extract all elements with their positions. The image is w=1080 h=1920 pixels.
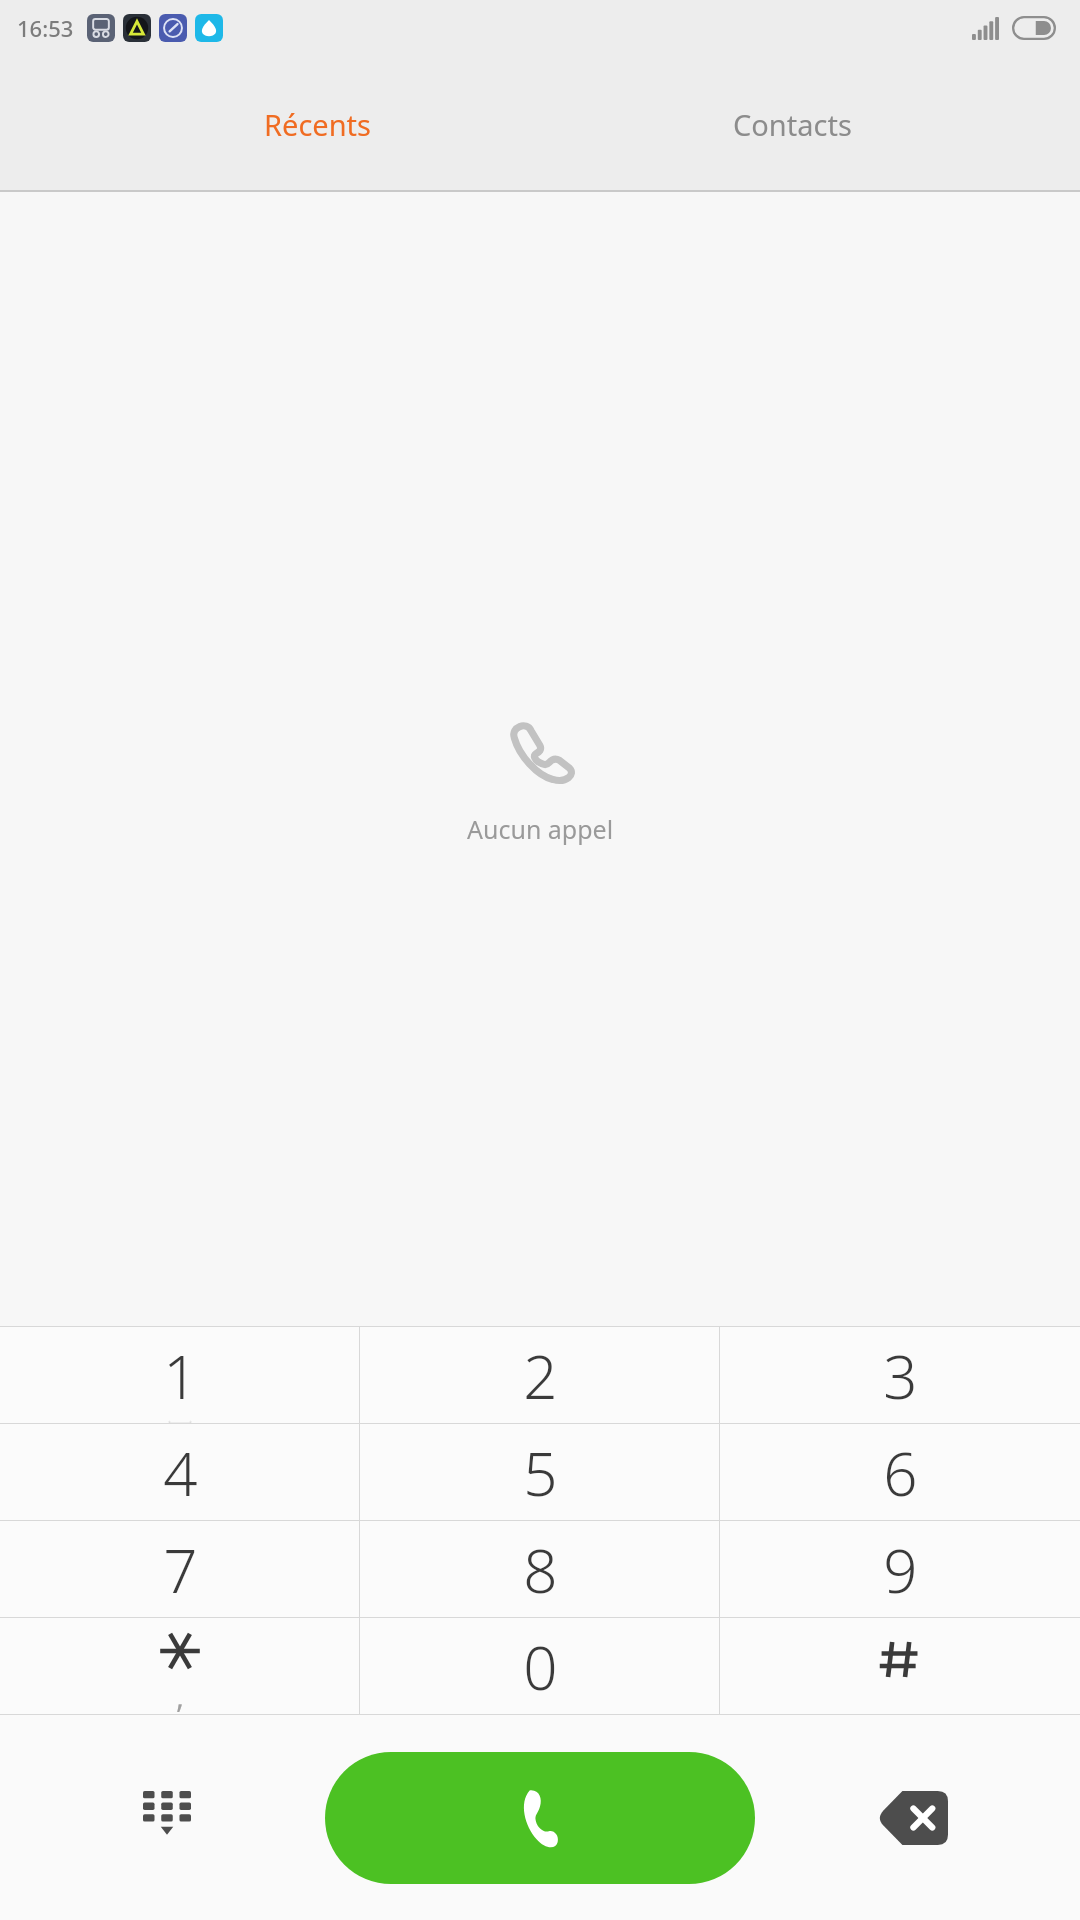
- staticText: Contacts: [733, 105, 852, 144]
- staticText: 6: [883, 1432, 918, 1514]
- staticText: 7: [163, 1529, 198, 1611]
- button[interactable]: 0: [360, 1618, 720, 1714]
- button[interactable]: 9: [720, 1521, 1080, 1617]
- staticText: Récents: [264, 105, 371, 144]
- button[interactable]: 3: [720, 1327, 1080, 1423]
- button[interactable]: Récents: [0, 56, 540, 192]
- staticText: 9: [883, 1529, 918, 1611]
- staticText: 16:53: [17, 13, 74, 43]
- button[interactable]: Contacts: [540, 56, 1080, 192]
- button[interactable]: 6: [720, 1424, 1080, 1520]
- button[interactable]: 5: [360, 1424, 720, 1520]
- button[interactable]: Backspace: [755, 1715, 1072, 1920]
- staticText: Aucun appel: [467, 812, 614, 846]
- button[interactable]: 2: [360, 1327, 720, 1423]
- staticText: 3: [883, 1335, 918, 1417]
- staticText: 4: [163, 1432, 198, 1514]
- staticText: 1: [163, 1335, 198, 1417]
- button[interactable]: 4: [0, 1424, 360, 1520]
- staticText: 5: [523, 1432, 558, 1514]
- staticText: 8: [523, 1529, 558, 1611]
- button[interactable]: 8: [360, 1521, 720, 1617]
- button[interactable]: [720, 1618, 1080, 1714]
- button[interactable]: 1: [0, 1327, 360, 1423]
- staticText: ,: [176, 1676, 185, 1714]
- staticText: 2: [523, 1335, 558, 1417]
- button[interactable]: ,: [0, 1618, 360, 1714]
- button[interactable]: Hide keypad: [8, 1715, 325, 1920]
- staticText: 0: [523, 1626, 558, 1708]
- button[interactable]: 7: [0, 1521, 360, 1617]
- button[interactable]: Call: [325, 1752, 755, 1884]
